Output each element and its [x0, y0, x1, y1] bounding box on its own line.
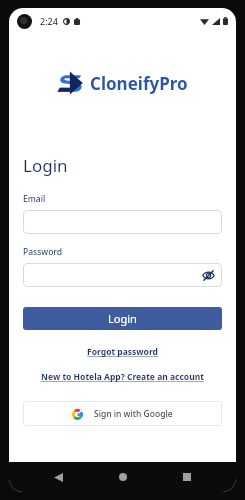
staticText: Forgot password — [87, 346, 158, 358]
button[interactable]: Recent apps — [172, 462, 202, 492]
staticText: Sign in with Google — [94, 408, 173, 420]
button[interactable]: Sign in with Google — [23, 401, 222, 426]
button[interactable]: Login — [23, 307, 222, 330]
staticText: 2:24 — [40, 15, 58, 27]
staticText: Email — [23, 193, 46, 205]
button[interactable] — [23, 210, 222, 234]
staticText: Login — [108, 311, 137, 326]
staticText: Password — [23, 246, 63, 258]
button[interactable]: Forgot password — [85, 344, 160, 360]
button[interactable]: Home — [108, 462, 138, 492]
button[interactable]: Show password — [200, 267, 216, 283]
staticText: New to Hotela App? Create an account — [41, 371, 204, 383]
button[interactable]: New to Hotela App? Create an account — [39, 369, 206, 385]
staticText: Login — [23, 154, 68, 177]
staticText: CloneifyPro — [90, 72, 188, 95]
button[interactable]: Show password — [23, 263, 222, 287]
button[interactable]: Back — [43, 462, 73, 492]
